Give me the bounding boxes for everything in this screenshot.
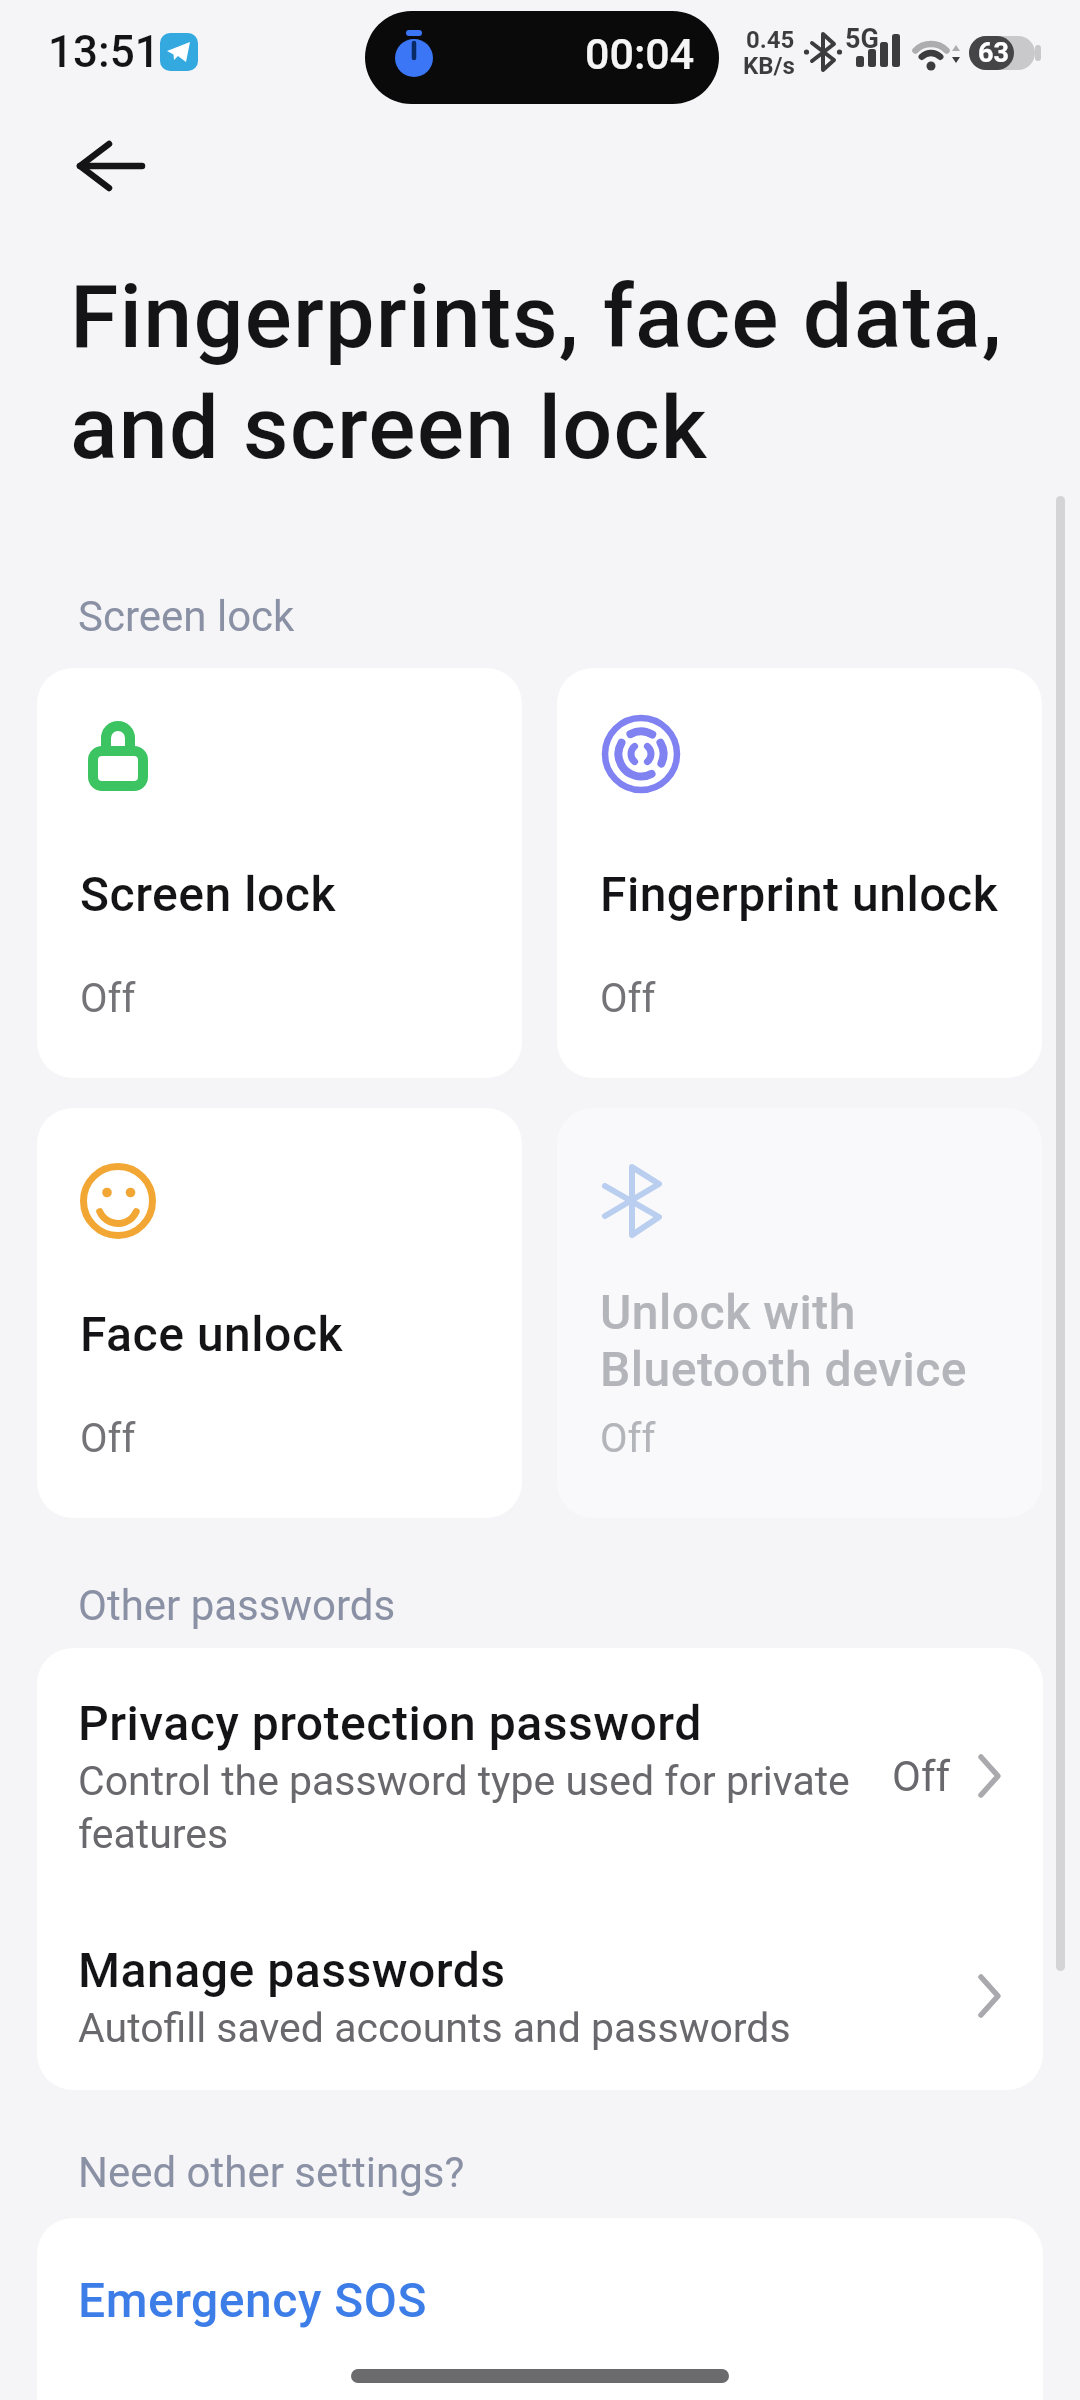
staticText: Unlock with (600, 1284, 856, 1340)
staticText: 13:51 (48, 26, 160, 78)
button[interactable]: Face unlock (37, 1108, 522, 1518)
staticText: features (78, 1810, 229, 1858)
button[interactable]: Unlock with (557, 1108, 1042, 1518)
staticText: Screen lock (78, 592, 295, 641)
staticText: Manage passwords (78, 1942, 506, 1998)
staticText: Off (892, 1752, 951, 1801)
button[interactable]: Emergency SOS (37, 2218, 1043, 2400)
staticText: Off (600, 1415, 656, 1462)
button[interactable]: Privacy protection password (37, 1648, 1043, 1890)
button[interactable]: Fingerprint unlock (557, 668, 1042, 1078)
staticText: Emergency SOS (78, 2272, 427, 2328)
staticText: KB/s (743, 52, 795, 80)
staticText: Off (80, 1415, 136, 1462)
staticText: Fingerprints, face data, and screen lock (70, 265, 1003, 479)
staticText: Off (600, 975, 656, 1022)
staticText: 0.45 (746, 26, 795, 54)
staticText: 00:04 (585, 29, 695, 79)
staticText: Fingerprint unlock (600, 866, 999, 922)
staticText: Privacy protection password (78, 1695, 702, 1751)
staticText: Autofill saved accounts and passwords (78, 2004, 791, 2052)
staticText: Bluetooth device (600, 1341, 968, 1397)
button[interactable] (56, 125, 166, 210)
button[interactable]: Screen lock (37, 668, 522, 1078)
staticText: Other passwords (78, 1581, 396, 1630)
staticText: Need other settings? (78, 2148, 465, 2197)
staticText: 5G (845, 23, 879, 55)
staticText: 63 (978, 37, 1009, 69)
staticText: Screen lock (80, 866, 337, 922)
staticText: Off (80, 975, 136, 1022)
staticText: Control the password type used for priva… (78, 1757, 850, 1805)
staticText: Face unlock (80, 1306, 344, 1362)
button[interactable]: Manage passwords (37, 1890, 1043, 2090)
